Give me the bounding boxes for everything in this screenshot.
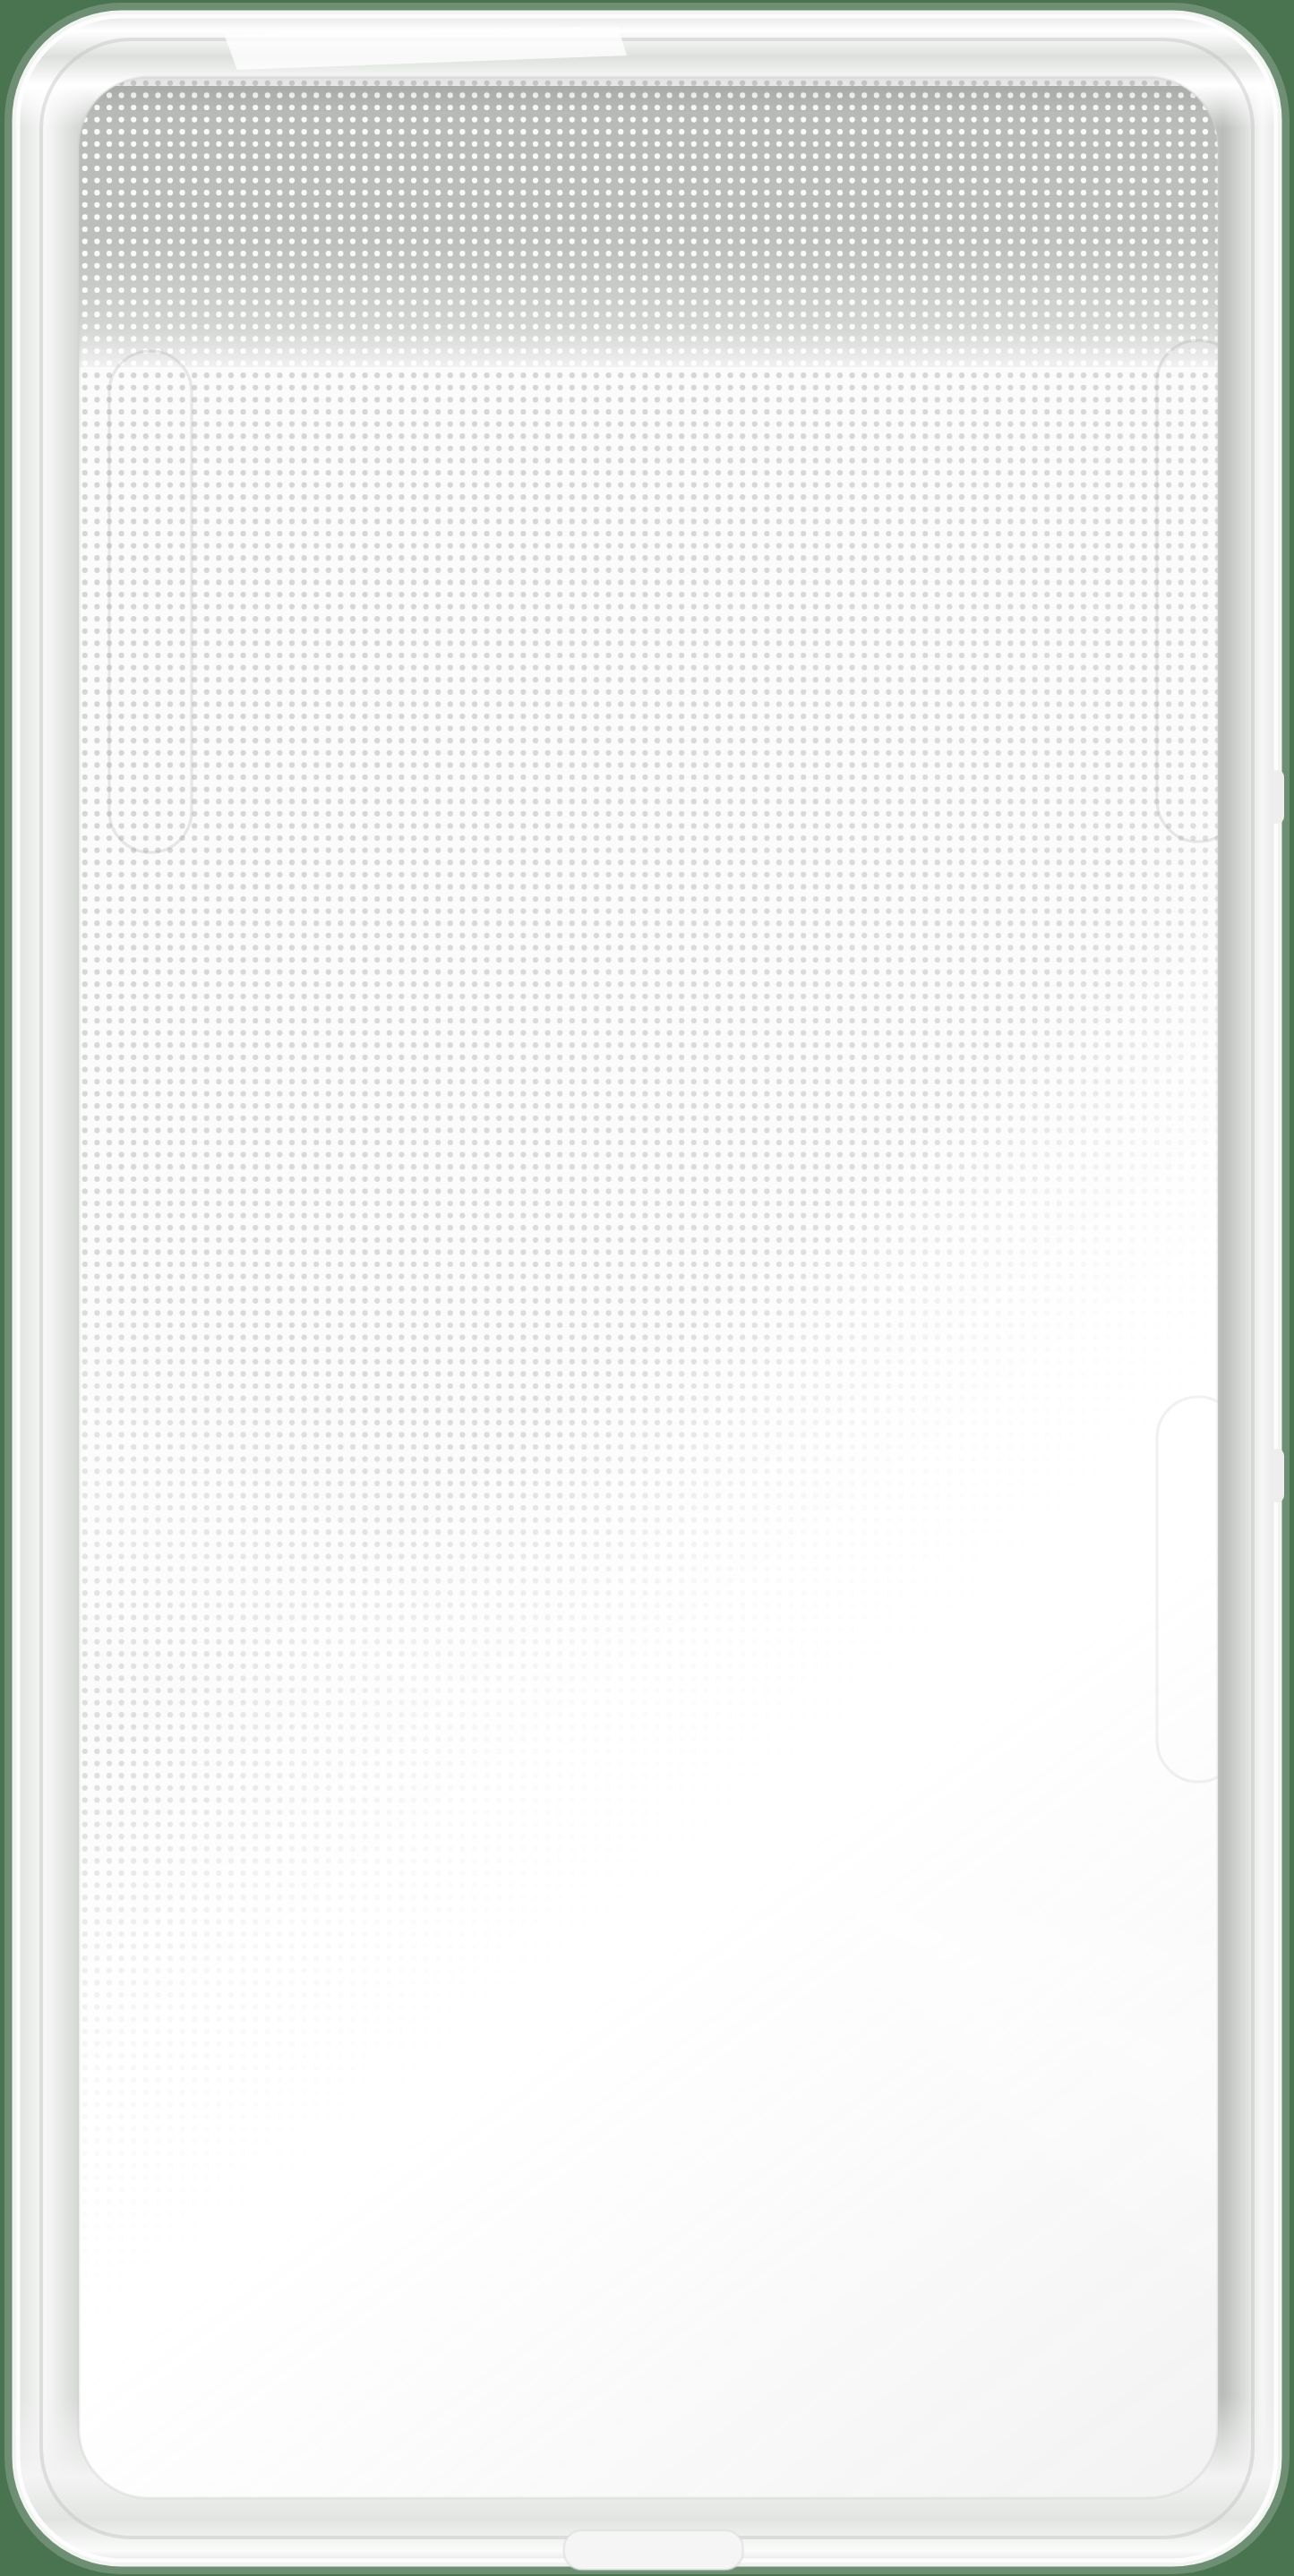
button[interactable]: Phone case product image [0,0,1294,2576]
